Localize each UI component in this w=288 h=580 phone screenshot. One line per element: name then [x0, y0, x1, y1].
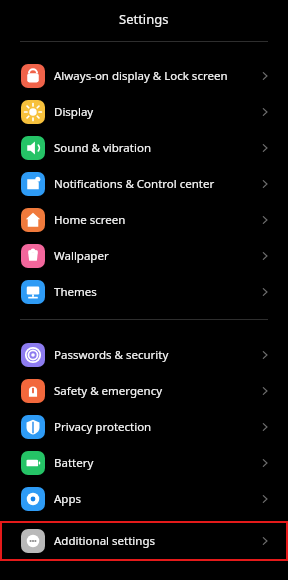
button[interactable]: Notifications & Control center [0, 166, 288, 202]
staticText: Notifications & Control center [54, 176, 215, 192]
button[interactable]: Additional settings [0, 521, 288, 561]
staticText: Privacy protection [54, 419, 152, 435]
button[interactable]: Safety & emergency [0, 373, 288, 409]
staticText: Battery [54, 455, 94, 471]
staticText: Additional settings [54, 533, 156, 549]
staticText: Themes [54, 284, 97, 300]
button[interactable]: Battery [0, 445, 288, 481]
button[interactable]: Apps [0, 481, 288, 517]
button[interactable]: Always-on display & Lock screen [0, 58, 288, 94]
button[interactable]: Display [0, 94, 288, 130]
staticText: Home screen [54, 212, 126, 228]
staticText: Display [54, 104, 94, 120]
button[interactable]: Privacy protection [0, 409, 288, 445]
staticText: Apps [54, 491, 82, 507]
staticText: Safety & emergency [54, 383, 163, 399]
button[interactable]: Sound & vibration [0, 130, 288, 166]
button[interactable]: Wallpaper [0, 238, 288, 274]
button[interactable]: Home screen [0, 202, 288, 238]
staticText: Wallpaper [54, 248, 109, 264]
staticText: Sound & vibration [54, 140, 151, 156]
staticText: Always-on display & Lock screen [54, 68, 228, 84]
staticText: Passwords & security [54, 347, 169, 363]
button[interactable]: Passwords & security [0, 337, 288, 373]
button[interactable]: Themes [0, 274, 288, 310]
staticText: Settings [119, 10, 169, 28]
